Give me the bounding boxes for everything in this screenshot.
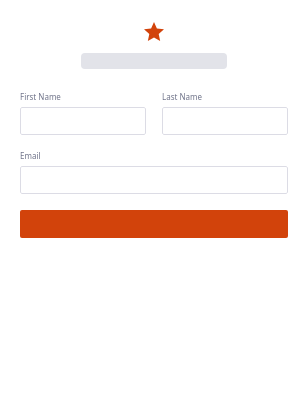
staticText: Email (20, 150, 41, 161)
other: Logo (143, 22, 165, 43)
staticText: First Name (20, 91, 61, 102)
button[interactable]: Last Name (162, 107, 288, 135)
staticText: Last Name (162, 91, 203, 102)
button[interactable]: Submit (20, 210, 288, 238)
button[interactable]: Email (20, 166, 288, 194)
button[interactable]: First Name (20, 107, 146, 135)
